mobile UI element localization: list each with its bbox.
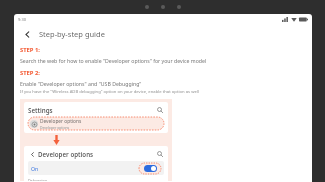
staticText: STEP 2:: [20, 69, 40, 77]
staticText: Developer options: [38, 150, 94, 158]
staticText: Enable "Developer options" and "USB Debu…: [20, 80, 142, 87]
button[interactable]: Search: [155, 105, 164, 114]
button[interactable]: Back: [28, 150, 36, 158]
staticText: Step-by-step guide: [39, 29, 105, 39]
staticText: 9:30: [18, 17, 26, 22]
button[interactable]: [144, 165, 157, 172]
staticText: Settings: [28, 106, 53, 114]
staticText: Search the web for how to enable "Develo…: [20, 57, 207, 64]
button[interactable]: On: [28, 161, 164, 175]
button[interactable]: Search: [155, 149, 164, 158]
staticText: Developer options: [40, 118, 82, 125]
button[interactable]: Back: [19, 26, 35, 42]
staticText: Developer options: [40, 125, 70, 130]
staticText: If you have the "Wireless ADB debugging"…: [20, 89, 199, 95]
staticText: STEP 1:: [20, 46, 40, 54]
button[interactable]: Developer options: [28, 117, 164, 130]
staticText: Debugging: [28, 178, 47, 181]
staticText: On: [31, 165, 39, 172]
